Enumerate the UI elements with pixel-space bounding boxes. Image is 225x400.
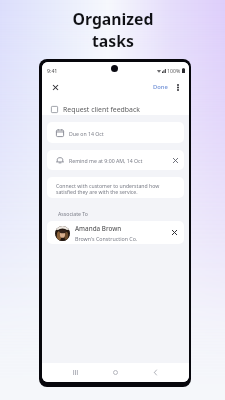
staticText: 100% <box>167 67 181 74</box>
button[interactable]: Amanda Brown <box>47 221 184 244</box>
staticText: Done <box>153 83 168 91</box>
button[interactable]: More options <box>172 82 183 93</box>
staticText: Amanda Brown <box>75 224 122 233</box>
button[interactable]: Connect with customer to understand how … <box>47 177 184 198</box>
button[interactable]: Remind me at 9:00 AM, 14 Oct <box>47 150 184 170</box>
staticText: Due on 14 Oct <box>69 130 104 137</box>
staticText: Associate To <box>58 210 88 217</box>
button[interactable]: Due on 14 Oct <box>47 122 184 143</box>
button[interactable]: Home <box>109 366 122 379</box>
button[interactable]: Done <box>151 80 170 94</box>
button[interactable]: Close <box>47 79 63 95</box>
staticText: Organized <box>72 8 154 30</box>
staticText: Request client feedback <box>63 105 140 114</box>
staticText: Brown's Construction Co. <box>75 235 138 242</box>
button[interactable]: Remove reminder <box>171 156 180 165</box>
button[interactable]: Remove contact <box>170 228 179 237</box>
staticText: tasks <box>92 30 134 52</box>
button[interactable]: Mark complete <box>51 106 58 113</box>
staticText: Remind me at 9:00 AM, 14 Oct <box>69 157 143 164</box>
button[interactable]: Recents <box>69 366 82 379</box>
staticText: 9:41 <box>47 67 58 74</box>
staticText: Connect with customer to understand how … <box>56 182 160 196</box>
button[interactable]: Back <box>149 366 162 379</box>
